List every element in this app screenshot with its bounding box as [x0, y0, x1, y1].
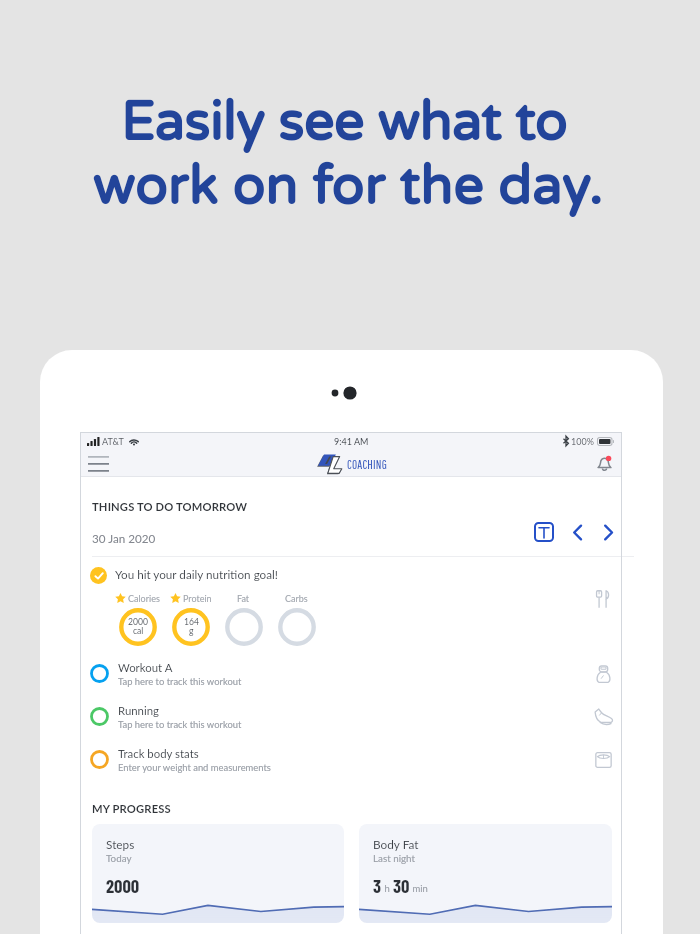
- staticText: Calories: [128, 593, 160, 604]
- staticText: Fat: [237, 593, 250, 604]
- button[interactable]: Previous day: [567, 522, 587, 542]
- staticText: Protein: [183, 593, 212, 604]
- staticText: 9:41 AM: [334, 436, 369, 447]
- staticText: 164: [184, 617, 199, 627]
- staticText: Last night: [373, 852, 415, 864]
- staticText: MY PROGRESS: [92, 802, 171, 815]
- staticText: h: [382, 883, 393, 894]
- staticText: Body Fat: [373, 837, 419, 851]
- staticText: Workout A: [118, 661, 173, 675]
- staticText: Track body stats: [118, 747, 199, 761]
- staticText: You hit your daily nutrition goal!: [115, 567, 278, 581]
- staticText: Enter your weight and measurements: [118, 762, 271, 773]
- staticText: COACHING: [347, 457, 388, 472]
- staticText: Running: [118, 704, 159, 718]
- button[interactable]: Next day: [598, 522, 618, 542]
- button[interactable]: Today: [534, 522, 554, 542]
- button[interactable]: Notifications: [592, 451, 616, 475]
- staticText: 3: [373, 874, 382, 896]
- button[interactable]: Workout A: [80, 652, 622, 695]
- staticText: 30: [393, 874, 410, 896]
- button[interactable]: Steps: [92, 824, 344, 923]
- button[interactable]: COACHING: [317, 450, 388, 476]
- staticText: 30 Jan 2020: [92, 531, 156, 545]
- staticText: cal: [133, 626, 144, 636]
- staticText: 2000: [106, 874, 140, 896]
- staticText: Steps: [106, 837, 135, 851]
- button[interactable]: Running: [80, 695, 622, 738]
- staticText: Today: [106, 852, 132, 864]
- staticText: g: [189, 626, 194, 636]
- staticText: 100%: [571, 436, 594, 447]
- button[interactable]: Track body stats: [80, 738, 622, 781]
- staticText: Easily see what to: [120, 91, 567, 155]
- staticText: Tap here to track this workout: [118, 719, 242, 730]
- staticText: min: [410, 883, 428, 894]
- button[interactable]: Body Fat: [359, 824, 612, 923]
- staticText: Carbs: [285, 593, 308, 604]
- button[interactable]: You hit your daily nutrition goal!: [80, 557, 622, 647]
- button[interactable]: Menu: [85, 452, 111, 474]
- staticText: THINGS TO DO TOMORROW: [92, 500, 248, 513]
- staticText: work on for the day.: [92, 155, 603, 219]
- staticText: 2000: [128, 617, 148, 627]
- staticText: Tap here to track this workout: [118, 676, 242, 687]
- staticText: AT&T: [102, 436, 124, 447]
